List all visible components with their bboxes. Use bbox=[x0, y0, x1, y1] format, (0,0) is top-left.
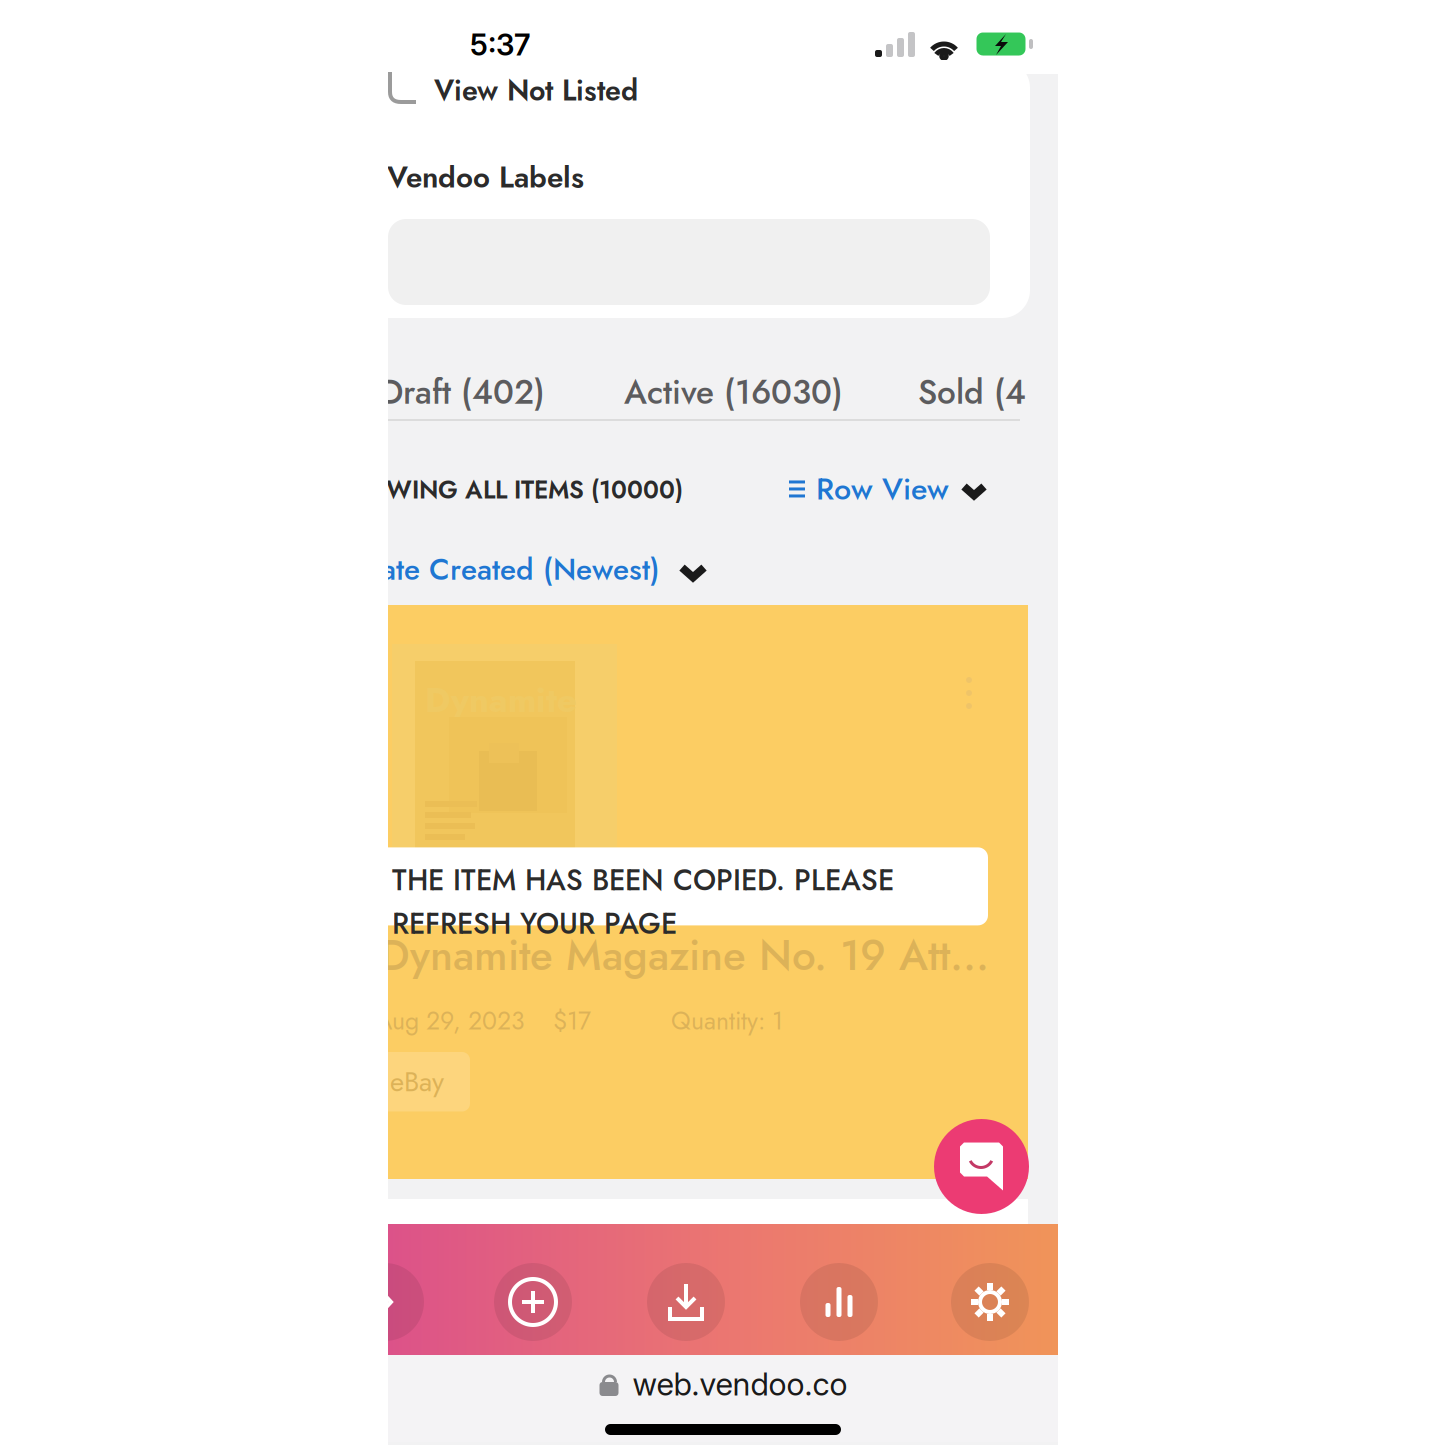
staticText: WING ALL ITEMS (10000) bbox=[386, 472, 683, 508]
staticText: Row View bbox=[816, 467, 949, 511]
staticText: 5:37 bbox=[470, 27, 530, 63]
button[interactable]: Import bbox=[647, 1263, 725, 1341]
button[interactable]: Row View bbox=[789, 461, 988, 517]
button[interactable]: Analytics bbox=[800, 1263, 878, 1341]
button[interactable]: Active (16030) bbox=[624, 358, 843, 426]
button[interactable]: Settings bbox=[951, 1263, 1029, 1341]
button[interactable]: ate Created (Newest) bbox=[381, 542, 708, 597]
staticText: Quantity: 1 bbox=[671, 1003, 783, 1039]
staticText: web.vendoo.co bbox=[632, 1365, 847, 1403]
staticText: eBay bbox=[390, 1062, 444, 1101]
button[interactable]: Sold (4 bbox=[918, 358, 1026, 426]
staticText: ate Created (Newest) bbox=[381, 548, 660, 591]
staticText: Draft (402) bbox=[380, 368, 545, 416]
button[interactable]: Add item bbox=[494, 1263, 572, 1341]
staticText: $17 bbox=[553, 1003, 591, 1039]
staticText: Dynamite bbox=[425, 675, 577, 725]
staticText: Active (16030) bbox=[624, 368, 843, 416]
staticText: Dynamite Magazine No. 19 Att... bbox=[380, 925, 989, 986]
button[interactable]: Open chat bbox=[934, 1119, 1029, 1214]
staticText: REFRESH YOUR PAGE bbox=[392, 903, 677, 945]
button[interactable]: Previous bbox=[346, 1263, 424, 1341]
button[interactable]: Draft (402) bbox=[380, 358, 545, 426]
staticText: View Not Listed bbox=[434, 70, 638, 111]
staticText: THE ITEM HAS BEEN COPIED. PLEASE bbox=[392, 859, 894, 901]
staticText: Sold (4 bbox=[918, 368, 1026, 416]
staticText: Vendoo Labels bbox=[387, 156, 584, 199]
staticText: Aug 29, 2023 bbox=[376, 1003, 525, 1039]
